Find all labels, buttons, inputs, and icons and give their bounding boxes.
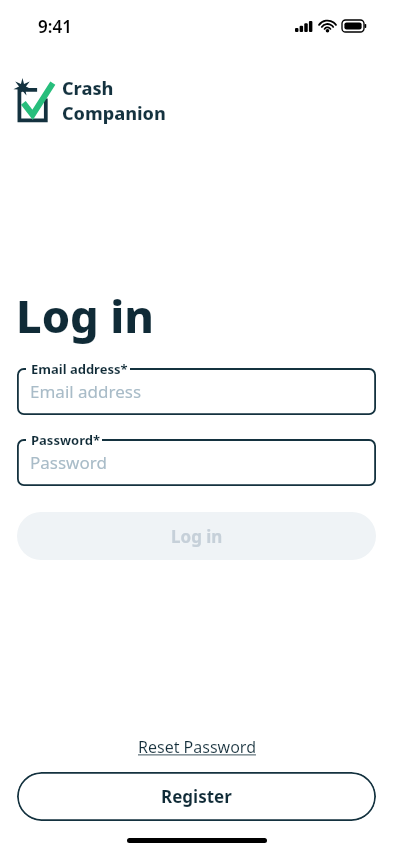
staticText: Log in: [16, 285, 155, 346]
staticText: Email address*: [31, 360, 128, 378]
staticText: Password*: [31, 431, 100, 449]
staticText: Reset Password: [138, 736, 256, 758]
staticText: Log in: [171, 525, 223, 548]
staticText: Companion: [62, 101, 166, 126]
button[interactable]: Email address*: [17, 358, 376, 415]
button[interactable]: Register: [17, 772, 376, 821]
staticText: Register: [161, 785, 232, 808]
button[interactable]: Reset Password: [130, 734, 264, 760]
staticText: Crash: [62, 76, 114, 101]
staticText: 9:41: [38, 15, 72, 38]
staticText: Email address: [30, 380, 142, 403]
staticText: Password: [30, 451, 107, 474]
button[interactable]: Password*: [17, 429, 376, 486]
button[interactable]: Log in: [17, 512, 376, 560]
